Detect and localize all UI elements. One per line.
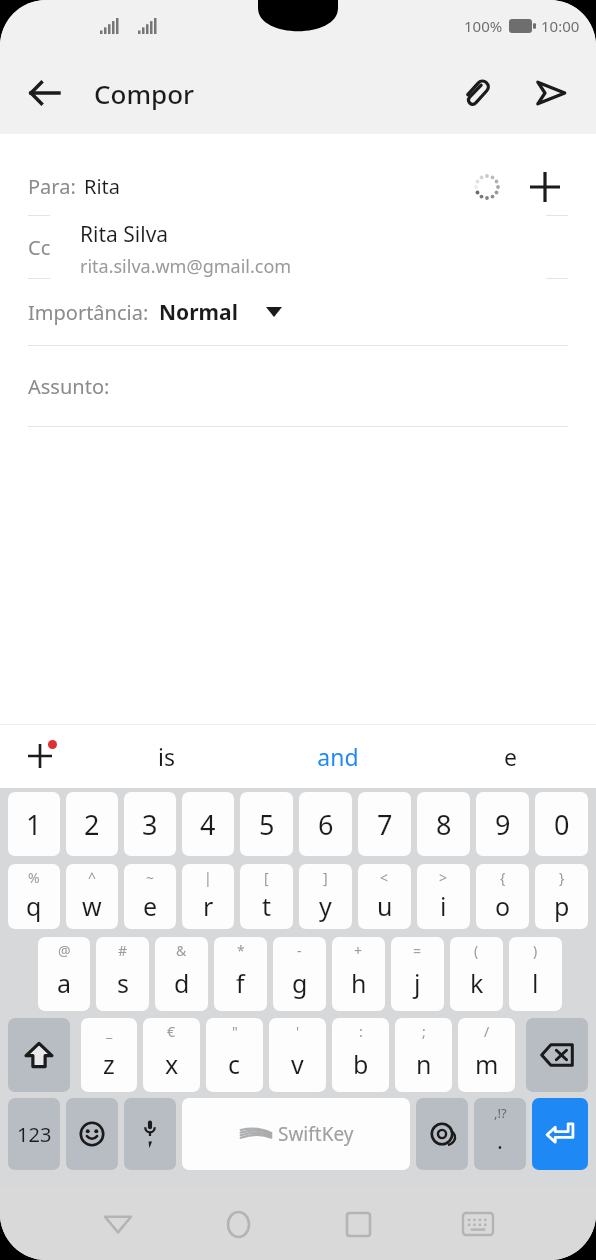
staticText: Rita Silva: [80, 220, 169, 249]
button[interactable]: is: [80, 724, 252, 788]
button[interactable]: ': [269, 1018, 326, 1092]
staticText: 8: [436, 806, 452, 843]
staticText: m: [475, 1047, 499, 1081]
button[interactable]: ~: [124, 864, 176, 929]
button[interactable]: Send: [524, 66, 578, 120]
button[interactable]: 7: [358, 792, 411, 856]
button[interactable]: More: [0, 724, 80, 788]
staticText: +: [354, 941, 363, 960]
staticText: €: [167, 1022, 176, 1041]
button[interactable]: |: [182, 864, 234, 929]
button[interactable]: _: [81, 1018, 137, 1092]
staticText: %: [28, 868, 40, 887]
staticText: -: [297, 941, 302, 960]
button[interactable]: 1: [8, 792, 60, 856]
button[interactable]: 3: [124, 792, 176, 856]
staticText: 0: [554, 806, 570, 843]
button[interactable]: Attach: [448, 66, 502, 120]
button[interactable]: 4: [182, 792, 234, 856]
button[interactable]: %: [8, 864, 60, 929]
button[interactable]: SwiftKey: [182, 1098, 410, 1170]
button[interactable]: 6: [299, 792, 352, 856]
button[interactable]: @: [38, 937, 90, 1011]
button[interactable]: e: [424, 724, 596, 788]
staticText: |: [204, 868, 212, 887]
staticText: f: [236, 966, 245, 1000]
staticText: 123: [17, 1121, 52, 1148]
button[interactable]: 0: [535, 792, 588, 856]
staticText: ): [533, 941, 538, 960]
button[interactable]: ;: [395, 1018, 452, 1092]
staticText: d: [174, 966, 190, 1000]
button[interactable]: <: [358, 864, 411, 929]
button[interactable]: >: [417, 864, 470, 929]
button[interactable]: *: [214, 937, 267, 1011]
staticText: Rita: [84, 173, 121, 200]
button[interactable]: ]: [299, 864, 352, 929]
button[interactable]: /: [458, 1018, 515, 1092]
button[interactable]: Para:: [0, 158, 596, 215]
button[interactable]: :: [332, 1018, 389, 1092]
button[interactable]: Back: [18, 66, 72, 120]
staticText: 4: [200, 806, 216, 843]
staticText: 10:00: [541, 16, 580, 36]
staticText: t: [262, 889, 272, 923]
staticText: i: [440, 889, 447, 923]
staticText: SwiftKey: [278, 1121, 354, 1147]
button[interactable]: Hide keyboard: [450, 1196, 506, 1252]
staticText: v: [291, 1047, 304, 1081]
button[interactable]: +: [332, 937, 385, 1011]
staticText: :: [359, 1022, 363, 1041]
button[interactable]: 5: [240, 792, 293, 856]
staticText: is: [158, 741, 175, 772]
button[interactable]: €: [143, 1018, 200, 1092]
button[interactable]: ): [509, 937, 562, 1011]
staticText: e: [504, 741, 517, 772]
staticText: ~: [146, 868, 155, 887]
staticText: o: [495, 889, 511, 923]
staticText: ]: [323, 868, 328, 887]
staticText: ^: [88, 868, 97, 887]
button[interactable]: Add recipient: [522, 164, 568, 210]
staticText: &: [176, 941, 187, 960]
button[interactable]: At sign: [416, 1098, 468, 1170]
staticText: w: [82, 889, 102, 923]
button[interactable]: =: [391, 937, 444, 1011]
button[interactable]: [: [240, 864, 293, 929]
button[interactable]: 9: [476, 792, 529, 856]
button[interactable]: Importância:: [0, 279, 596, 345]
button[interactable]: Rita Silva: [50, 206, 546, 295]
button[interactable]: Enter: [532, 1098, 588, 1170]
button[interactable]: Recents: [330, 1196, 386, 1252]
button[interactable]: ,!?: [474, 1098, 526, 1170]
button[interactable]: Assunto:: [0, 346, 596, 426]
staticText: Assunto:: [28, 373, 110, 400]
button[interactable]: {: [476, 864, 529, 929]
staticText: @: [58, 941, 71, 960]
staticText: .: [497, 1125, 503, 1155]
staticText: Normal: [159, 298, 238, 327]
button[interactable]: Emoji: [66, 1098, 118, 1170]
button[interactable]: Voice input: [124, 1098, 176, 1170]
button[interactable]: 123: [8, 1098, 60, 1170]
staticText: =: [413, 941, 422, 960]
button[interactable]: 8: [417, 792, 470, 856]
button[interactable]: Cc:: [0, 216, 596, 278]
button[interactable]: -: [273, 937, 326, 1011]
button[interactable]: 2: [66, 792, 118, 856]
button[interactable]: Home: [210, 1196, 266, 1252]
staticText: s: [117, 966, 129, 1000]
button[interactable]: #: [96, 937, 149, 1011]
button[interactable]: ": [206, 1018, 263, 1092]
button[interactable]: (: [450, 937, 503, 1011]
button[interactable]: and: [252, 724, 424, 788]
button[interactable]: Shift: [8, 1018, 70, 1092]
button[interactable]: }: [535, 864, 588, 929]
button[interactable]: Backspace: [526, 1018, 588, 1092]
staticText: 2: [84, 806, 100, 843]
button[interactable]: Back: [90, 1196, 146, 1252]
staticText: <: [380, 868, 389, 887]
button[interactable]: ^: [66, 864, 118, 929]
button[interactable]: &: [155, 937, 208, 1011]
staticText: u: [377, 889, 393, 923]
